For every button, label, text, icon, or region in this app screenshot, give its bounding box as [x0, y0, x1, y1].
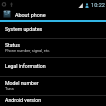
staticText: Legal information [5, 63, 46, 69]
staticText: System updates [5, 26, 43, 32]
staticText: Model number [5, 80, 39, 86]
button[interactable]: System updates [0, 22, 106, 39]
button[interactable]: About phone [0, 10, 106, 20]
staticText: 10:22 [91, 2, 105, 9]
staticText: Phone number, signal, etc. [5, 48, 51, 53]
staticText: Status [5, 42, 20, 48]
button[interactable]: Status [0, 39, 106, 58]
button[interactable]: Android version [0, 96, 106, 106]
staticText: About phone [15, 12, 46, 18]
other: About phone [3, 10, 11, 18]
staticText: Tuna [5, 86, 14, 91]
button[interactable]: Legal information [0, 58, 106, 77]
staticText: Android version [5, 97, 42, 103]
button[interactable]: Model number [0, 77, 106, 96]
